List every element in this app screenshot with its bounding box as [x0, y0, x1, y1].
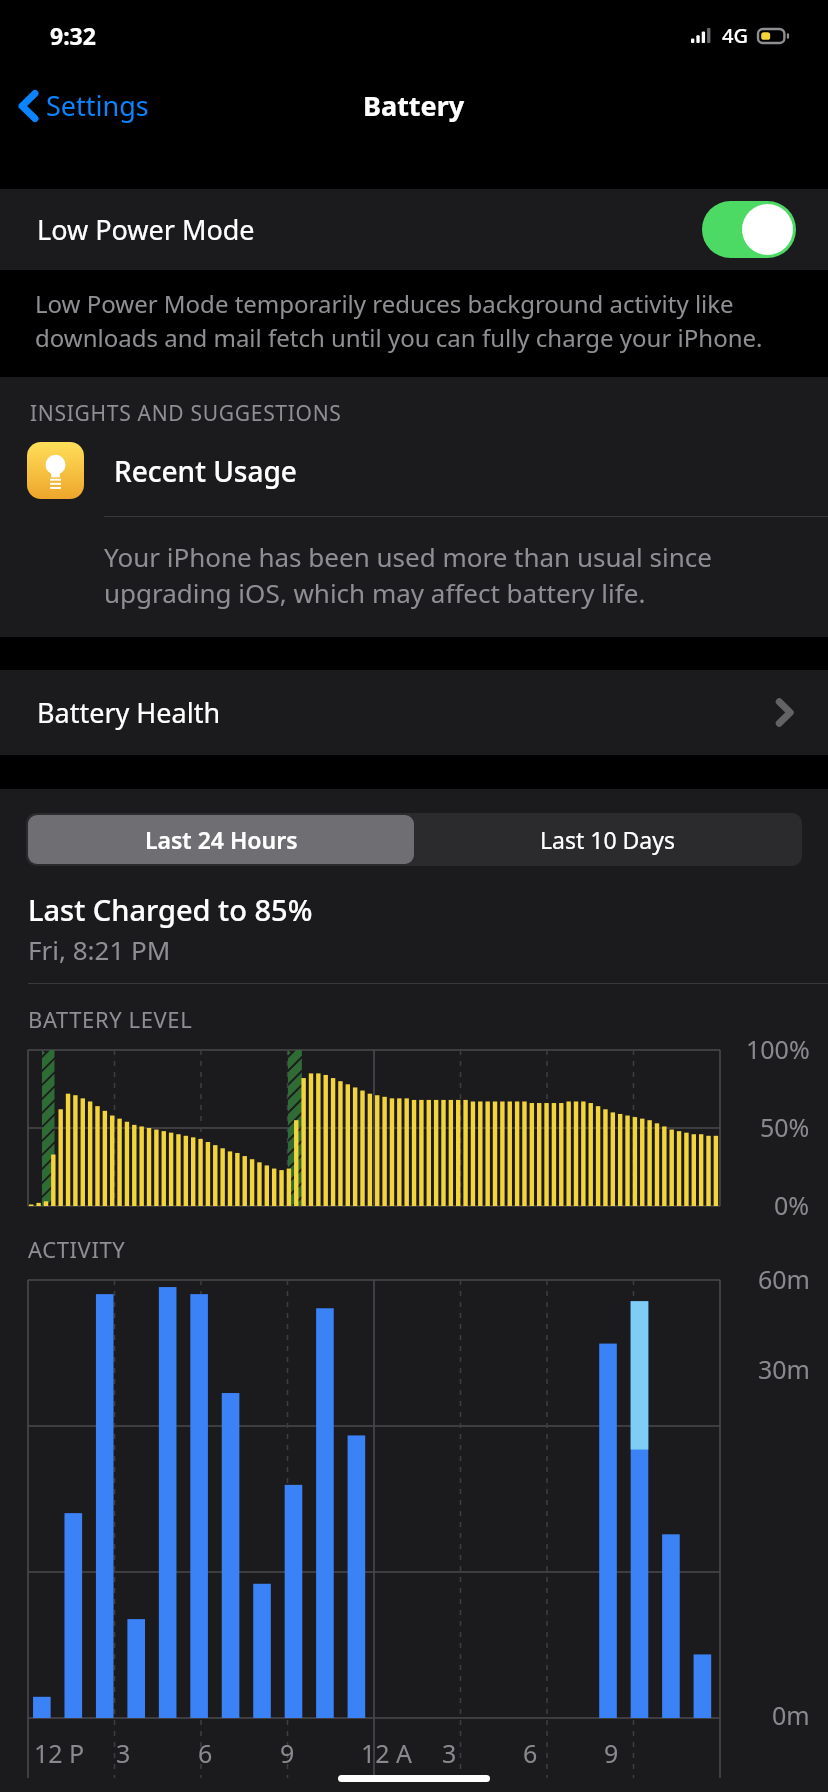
staticText: 30m	[758, 1352, 810, 1386]
staticText: Recent Usage	[114, 452, 297, 490]
button[interactable]: Settings	[0, 79, 163, 132]
button[interactable]: Recent Usage	[0, 442, 828, 637]
button[interactable]: Battery Health	[0, 670, 828, 755]
staticText: INSIGHTS AND SUGGESTIONS	[30, 399, 342, 428]
staticText: 3	[442, 1736, 457, 1770]
staticText: Last 10 Days	[540, 824, 675, 855]
other: Low Power Mode toggle	[702, 201, 796, 258]
staticText: 9	[280, 1736, 295, 1770]
staticText: 12 A	[361, 1736, 413, 1770]
staticText: Last Charged to 85%	[28, 890, 313, 929]
staticText: 9	[604, 1736, 619, 1770]
button[interactable]: Last 24 Hours	[28, 815, 414, 864]
staticText: 0m	[772, 1698, 810, 1732]
staticText: 6	[198, 1736, 213, 1770]
staticText: Battery	[363, 87, 465, 124]
staticText: Settings	[46, 87, 149, 124]
staticText: 9:32	[50, 20, 96, 51]
staticText: BATTERY LEVEL	[28, 1004, 193, 1034]
button[interactable]: Low Power Mode	[0, 189, 828, 270]
staticText: Your iPhone has been used more than usua…	[104, 539, 794, 611]
staticText: Battery Health	[37, 694, 221, 731]
other: Open Battery Health	[777, 699, 792, 726]
staticText: 0%	[774, 1188, 810, 1222]
staticText: ACTIVITY	[28, 1234, 126, 1264]
staticText: 60m	[758, 1262, 810, 1296]
staticText: 50%	[760, 1110, 810, 1144]
staticText: 12 P	[34, 1736, 85, 1770]
staticText: 100%	[746, 1032, 810, 1066]
staticText: Last 24 Hours	[145, 824, 298, 855]
staticText: Low Power Mode	[37, 211, 255, 248]
button[interactable]: Last 10 Days	[414, 815, 800, 864]
staticText: 6	[523, 1736, 538, 1770]
staticText: Fri, 8:21 PM	[28, 932, 171, 967]
staticText: Low Power Mode temporarily reduces backg…	[35, 287, 794, 355]
staticText: 4G	[722, 22, 748, 49]
staticText: 3	[116, 1736, 131, 1770]
